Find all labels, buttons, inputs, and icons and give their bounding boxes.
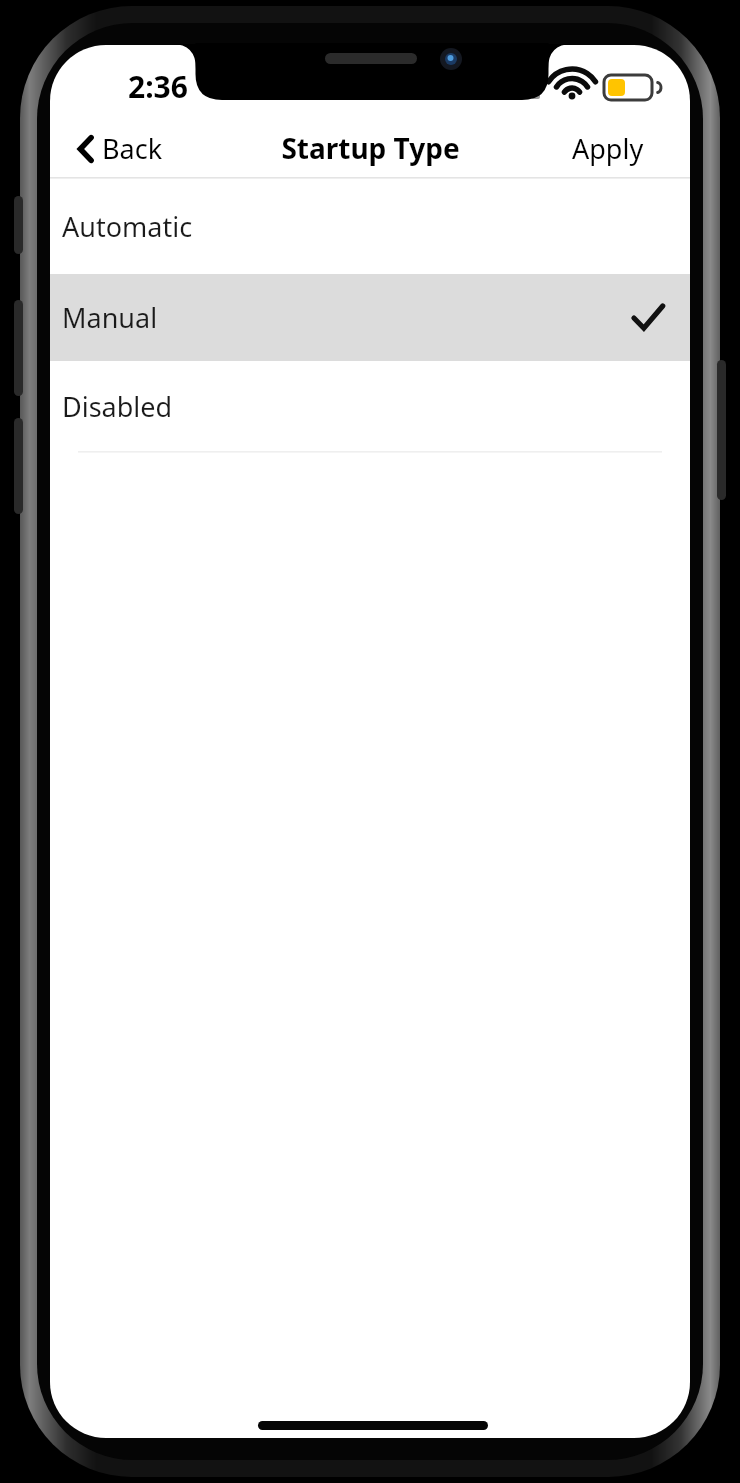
button[interactable]: Back <box>72 122 169 174</box>
staticText: Startup Type <box>281 129 460 167</box>
button[interactable]: Automatic <box>50 179 690 274</box>
staticText: 2:36 <box>128 66 188 107</box>
button[interactable]: Manual <box>50 274 690 361</box>
button[interactable]: Apply <box>566 122 650 174</box>
button[interactable]: Disabled <box>50 361 690 452</box>
staticText: Apply <box>572 130 644 167</box>
staticText: Manual <box>62 299 158 336</box>
staticText: Back <box>102 130 163 167</box>
staticText: Disabled <box>62 388 173 425</box>
staticText: Automatic <box>62 208 193 245</box>
other: Selected <box>632 303 664 333</box>
